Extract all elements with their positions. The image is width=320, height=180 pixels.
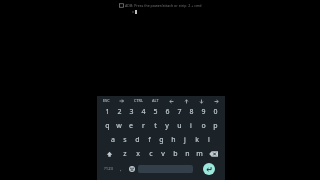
staticText: c	[149, 149, 153, 159]
staticText: v	[161, 149, 165, 159]
button[interactable]: o	[197, 119, 209, 133]
staticText: ESC	[103, 98, 110, 103]
staticText: f	[148, 135, 151, 145]
button[interactable]: 9	[197, 105, 209, 119]
button[interactable]: w	[113, 119, 125, 133]
staticText: u	[177, 121, 182, 131]
button[interactable]: Backspace	[205, 147, 221, 161]
button[interactable]: 5	[149, 105, 161, 119]
staticText: n	[185, 149, 190, 159]
button[interactable]: p	[209, 119, 221, 133]
button[interactable]: 6	[161, 105, 173, 119]
button[interactable]: ESC	[102, 97, 111, 104]
button[interactable]: ?123	[101, 162, 116, 176]
staticText: 3	[129, 107, 134, 117]
button[interactable]: r	[137, 119, 149, 133]
staticText: 0	[213, 107, 218, 117]
button[interactable]: v	[157, 147, 169, 161]
staticText: e	[129, 121, 133, 131]
button[interactable]: 7	[173, 105, 185, 119]
staticText: i	[190, 121, 192, 131]
staticText: x	[132, 9, 134, 14]
button[interactable]: g	[155, 133, 167, 147]
staticText: b	[173, 149, 178, 159]
staticText: g	[159, 135, 164, 145]
staticText: p	[213, 121, 218, 131]
staticText: k	[195, 135, 199, 145]
staticText: j	[184, 135, 186, 145]
staticText: d	[135, 135, 140, 145]
button[interactable]: 3	[125, 105, 137, 119]
staticText: z	[123, 149, 127, 159]
staticText: h	[171, 135, 176, 145]
button[interactable]: Emoji	[126, 162, 137, 176]
button[interactable]: 2	[113, 105, 125, 119]
button[interactable]: Arrow left	[167, 97, 175, 105]
button[interactable]: 8	[185, 105, 197, 119]
button[interactable]: Tab	[118, 97, 126, 105]
staticText: 6	[165, 107, 170, 117]
staticText: t	[154, 121, 157, 131]
staticText: s	[123, 135, 127, 145]
button[interactable]: b	[169, 147, 181, 161]
button[interactable]: u	[173, 119, 185, 133]
staticText: 1	[105, 107, 110, 117]
button[interactable]: Enter	[203, 163, 215, 175]
staticText: ADB: Press the power/attach or strip 2 +…	[125, 3, 202, 8]
staticText: m	[196, 149, 203, 159]
button[interactable]: m	[193, 147, 205, 161]
staticText: 7	[177, 107, 182, 117]
button[interactable]: a	[107, 133, 119, 147]
staticText: y	[165, 121, 169, 131]
button[interactable]: f	[143, 133, 155, 147]
button[interactable]: t	[149, 119, 161, 133]
staticText: ALT	[152, 98, 159, 103]
staticText: CTRL	[134, 98, 143, 103]
staticText: o	[201, 121, 206, 131]
button[interactable]: h	[167, 133, 179, 147]
button[interactable]: Arrow right	[212, 97, 220, 105]
button[interactable]: s	[119, 133, 131, 147]
staticText: 2	[117, 107, 122, 117]
staticText: 8	[189, 107, 194, 117]
staticText: ,	[120, 165, 122, 173]
button[interactable]: 0	[209, 105, 221, 119]
button[interactable]: c	[144, 147, 157, 161]
button[interactable]: 4	[137, 105, 149, 119]
staticText: l	[208, 135, 210, 145]
button[interactable]: l	[203, 133, 215, 147]
staticText: x	[136, 149, 140, 159]
button[interactable]: j	[179, 133, 191, 147]
button[interactable]: e	[125, 119, 137, 133]
staticText: r	[142, 121, 145, 131]
staticText: a	[111, 135, 115, 145]
button[interactable]: Arrow up	[182, 97, 190, 105]
button[interactable]: z	[118, 147, 131, 161]
staticText: w	[116, 121, 122, 131]
button[interactable]: ALT	[151, 97, 160, 104]
button[interactable]: Shift	[101, 147, 118, 161]
button[interactable]: n	[181, 147, 193, 161]
button[interactable]: Arrow down	[197, 97, 205, 105]
button[interactable]: 1	[101, 105, 113, 119]
button[interactable]: i	[185, 119, 197, 133]
staticText: 4	[141, 107, 146, 117]
button[interactable]: d	[131, 133, 143, 147]
staticText: q	[105, 121, 110, 131]
button[interactable]: k	[191, 133, 203, 147]
staticText: 9	[201, 107, 206, 117]
button[interactable]: CTRL	[133, 97, 144, 104]
staticText: 5	[153, 107, 158, 117]
button[interactable]: ,	[116, 162, 126, 176]
button[interactable]: q	[101, 119, 113, 133]
staticText: ?123	[104, 166, 114, 172]
button[interactable]: x	[131, 147, 144, 161]
button[interactable]: y	[161, 119, 173, 133]
